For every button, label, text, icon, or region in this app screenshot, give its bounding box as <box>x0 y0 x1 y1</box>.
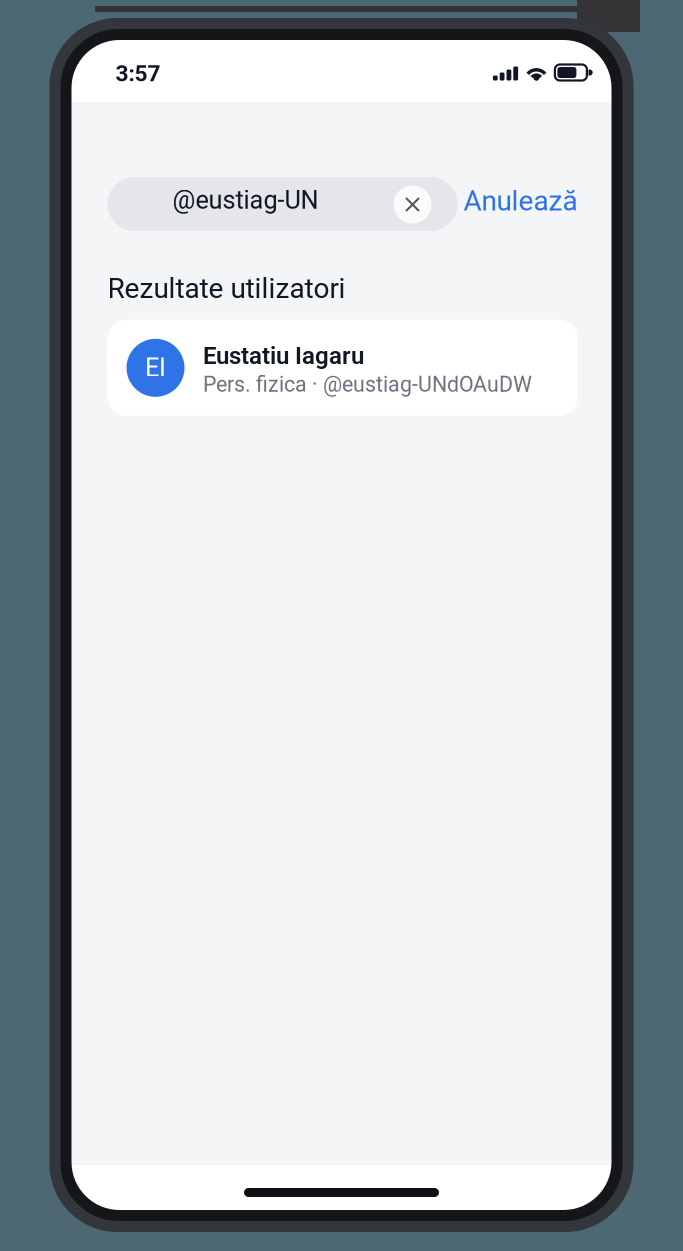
staticText: Pers. fizica · @eustiag-UNdOAuDW <box>203 372 532 397</box>
staticText: @eustiag-UN <box>172 185 318 215</box>
button[interactable]: Anulează <box>457 177 583 231</box>
staticText: Anulează <box>463 185 577 217</box>
staticText: Eustatiu Iagaru <box>203 342 364 370</box>
staticText: 3:57 <box>115 60 160 87</box>
staticText: Rezultate utilizatori <box>107 272 345 305</box>
button[interactable]: Clear search text <box>389 181 435 227</box>
button[interactable]: EI <box>107 320 577 416</box>
staticText: EI <box>145 353 166 383</box>
